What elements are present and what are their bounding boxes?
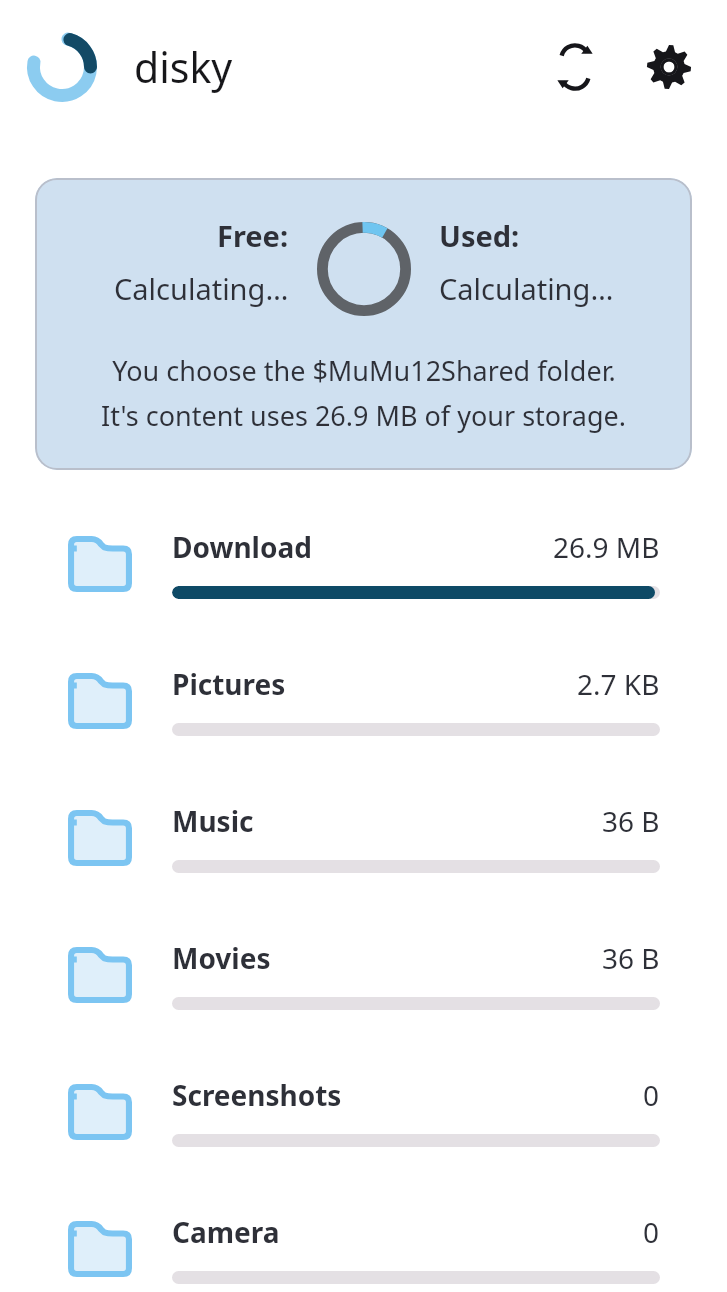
staticText: It's content uses 26.9 MB of your storag… [101,397,626,434]
staticText: Free: [217,216,289,255]
staticText: disky [134,39,233,95]
staticText: Calculating… [439,269,614,308]
button[interactable]: Screenshots [0,1066,727,1203]
staticText: You choose the $MuMu12Shared folder. [112,352,616,389]
button[interactable]: Camera [0,1203,727,1292]
staticText: Download [172,528,312,566]
staticText: Calculating… [114,269,289,308]
button[interactable]: Settings [633,31,705,103]
staticText: Used: [439,216,520,255]
staticText: 0 [643,1213,660,1251]
staticText: 0 [643,1076,660,1114]
button[interactable]: Free: [35,178,692,470]
staticText: 36 B [602,939,660,977]
button[interactable]: Movies [0,929,727,1066]
button[interactable]: disky logo [22,27,102,107]
staticText: Pictures [172,665,286,703]
staticText: Music [172,802,254,840]
staticText: 36 B [602,802,660,840]
staticText: 2.7 KB [577,665,660,703]
button[interactable]: Download [0,518,727,655]
staticText: Movies [172,939,271,977]
button[interactable]: Pictures [0,655,727,792]
staticText: Camera [172,1213,280,1251]
button[interactable]: Music [0,792,727,929]
staticText: Screenshots [172,1076,342,1114]
staticText: 26.9 MB [553,528,660,566]
button[interactable]: Refresh [539,31,611,103]
